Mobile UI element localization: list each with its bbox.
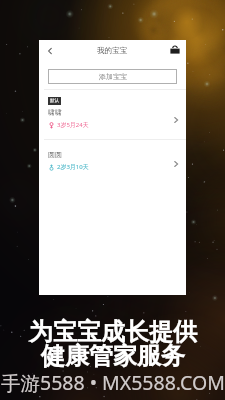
staticText: 健康管家服务 <box>41 341 185 371</box>
staticText: 圆圆 <box>48 150 62 159</box>
staticText: 2岁3月10天 <box>57 163 89 171</box>
button[interactable]: Shop <box>168 45 180 57</box>
staticText: 为宝宝成长提供 <box>29 317 197 347</box>
button[interactable]: 圆圆 <box>39 139 186 184</box>
staticText: 我的宝宝 <box>97 46 128 56</box>
staticText: 3岁5月24天 <box>57 121 89 129</box>
button[interactable]: Back <box>43 44 56 57</box>
staticText: 啸啸 <box>48 108 62 117</box>
staticText: 添加宝宝 <box>99 72 127 81</box>
staticText: 默认 <box>50 98 59 104</box>
button[interactable]: 添加宝宝 <box>48 69 177 84</box>
button[interactable]: 默认 <box>39 89 186 139</box>
staticText: 手游5588 • MX5588.COM <box>1 369 225 396</box>
